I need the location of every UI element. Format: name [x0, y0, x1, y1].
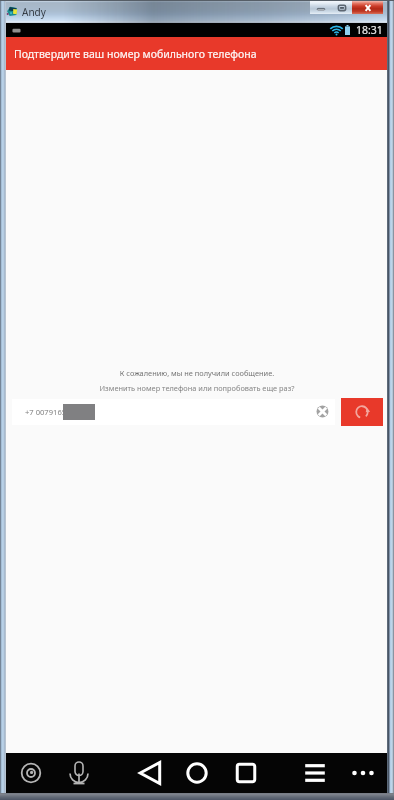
staticText: Подтвердите ваш номер мобильного телефон…	[14, 47, 257, 61]
button[interactable]: Back	[137, 760, 163, 786]
button[interactable]: Home	[184, 760, 210, 786]
staticText: +7 0079165	[25, 407, 67, 417]
button[interactable]: Retry	[341, 398, 383, 426]
button[interactable]: Recents	[233, 760, 259, 786]
button[interactable]: Minimize	[310, 1, 331, 14]
button[interactable]: +7 0079165	[12, 399, 335, 425]
staticText: 18:31	[356, 23, 383, 37]
staticText: Изменить номер телефона или попробовать …	[6, 383, 388, 393]
button[interactable]: Microphone	[65, 759, 93, 787]
button[interactable]: More options	[350, 760, 376, 786]
button[interactable]: Maximize	[331, 1, 352, 14]
staticText: Andy	[22, 5, 46, 19]
button[interactable]: Close	[352, 1, 383, 14]
button[interactable]: Clear	[314, 403, 331, 420]
button[interactable]: Screenshot	[18, 760, 44, 786]
button[interactable]: Menu	[302, 760, 328, 786]
staticText: К сожалению, мы не получили сообщение.	[6, 368, 388, 378]
